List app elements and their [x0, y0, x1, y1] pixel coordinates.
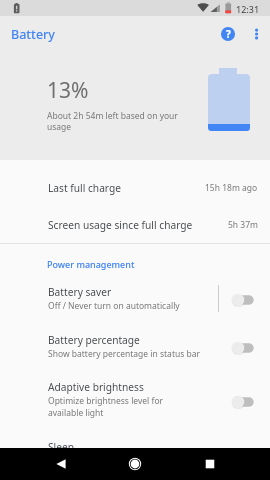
button[interactable]: More options — [243, 16, 268, 52]
button[interactable]: Screen usage since full charge — [0, 206, 270, 243]
staticText: 5h 37m — [228, 219, 258, 231]
staticText: 13% — [47, 76, 89, 105]
button[interactable]: Help — [213, 16, 243, 52]
staticText: Battery saver — [48, 285, 112, 299]
staticText: Battery percentage — [48, 333, 140, 347]
staticText: Battery — [11, 26, 55, 43]
staticText: Sleep — [48, 440, 74, 454]
staticText: Screen usage since full charge — [48, 218, 193, 232]
staticText: After 30 seconds of inactivity — [48, 455, 200, 467]
button[interactable]: Adaptive brightness — [0, 370, 270, 429]
button[interactable]: Back — [43, 448, 78, 480]
button[interactable]: Home — [117, 448, 152, 480]
staticText: Power management — [47, 258, 135, 270]
button[interactable]: Toggle — [232, 395, 254, 409]
staticText: 12:31 — [236, 3, 260, 15]
button[interactable]: Last full charge — [0, 169, 270, 206]
staticText: Show battery percentage in status bar — [48, 348, 200, 360]
staticText: ? — [226, 27, 231, 41]
button[interactable]: Battery percentage — [0, 322, 270, 370]
staticText: 15h 18m ago — [205, 182, 258, 194]
staticText: About 2h 54m left based on your usage — [47, 110, 197, 132]
button[interactable]: Toggle — [232, 341, 254, 355]
staticText: Last full charge — [48, 181, 121, 195]
staticText: Off / Never turn on automatically — [48, 300, 200, 312]
staticText: Optimize brightness level for available … — [48, 395, 200, 419]
button[interactable]: Battery saver — [0, 274, 270, 322]
staticText: Adaptive brightness — [48, 380, 144, 394]
button[interactable]: Toggle — [232, 293, 254, 307]
button[interactable]: Sleep — [0, 429, 270, 477]
button[interactable]: Recent apps — [192, 448, 227, 480]
